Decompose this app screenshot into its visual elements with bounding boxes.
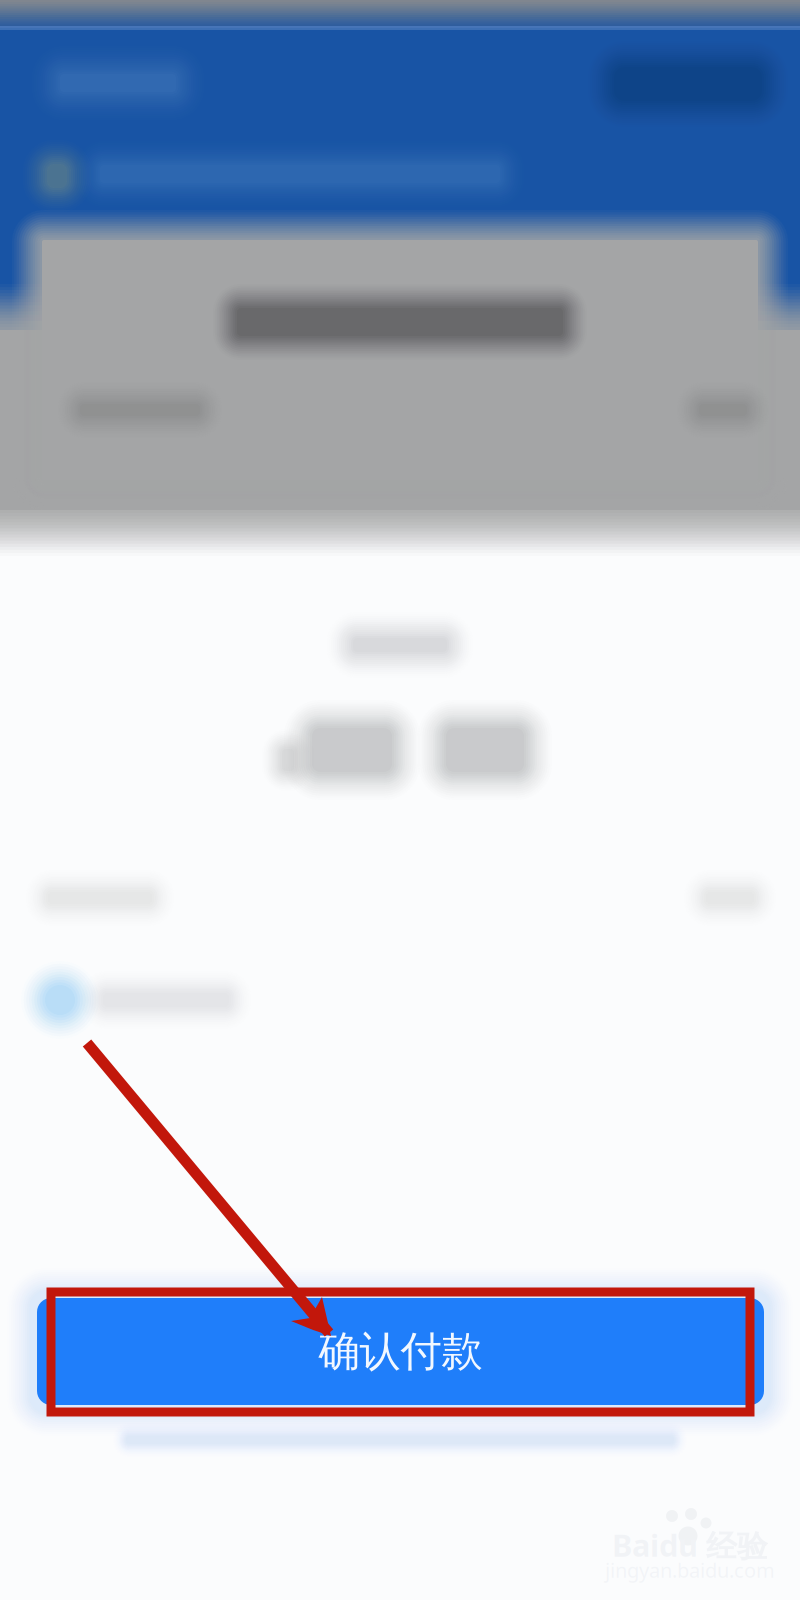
staticText: 确认付款 xyxy=(318,1326,482,1377)
staticText: Baidu 经验 xyxy=(612,1525,768,1565)
staticText: jingyan.baidu.com xyxy=(605,1557,775,1583)
button[interactable]: 确认付款 xyxy=(37,1298,764,1405)
